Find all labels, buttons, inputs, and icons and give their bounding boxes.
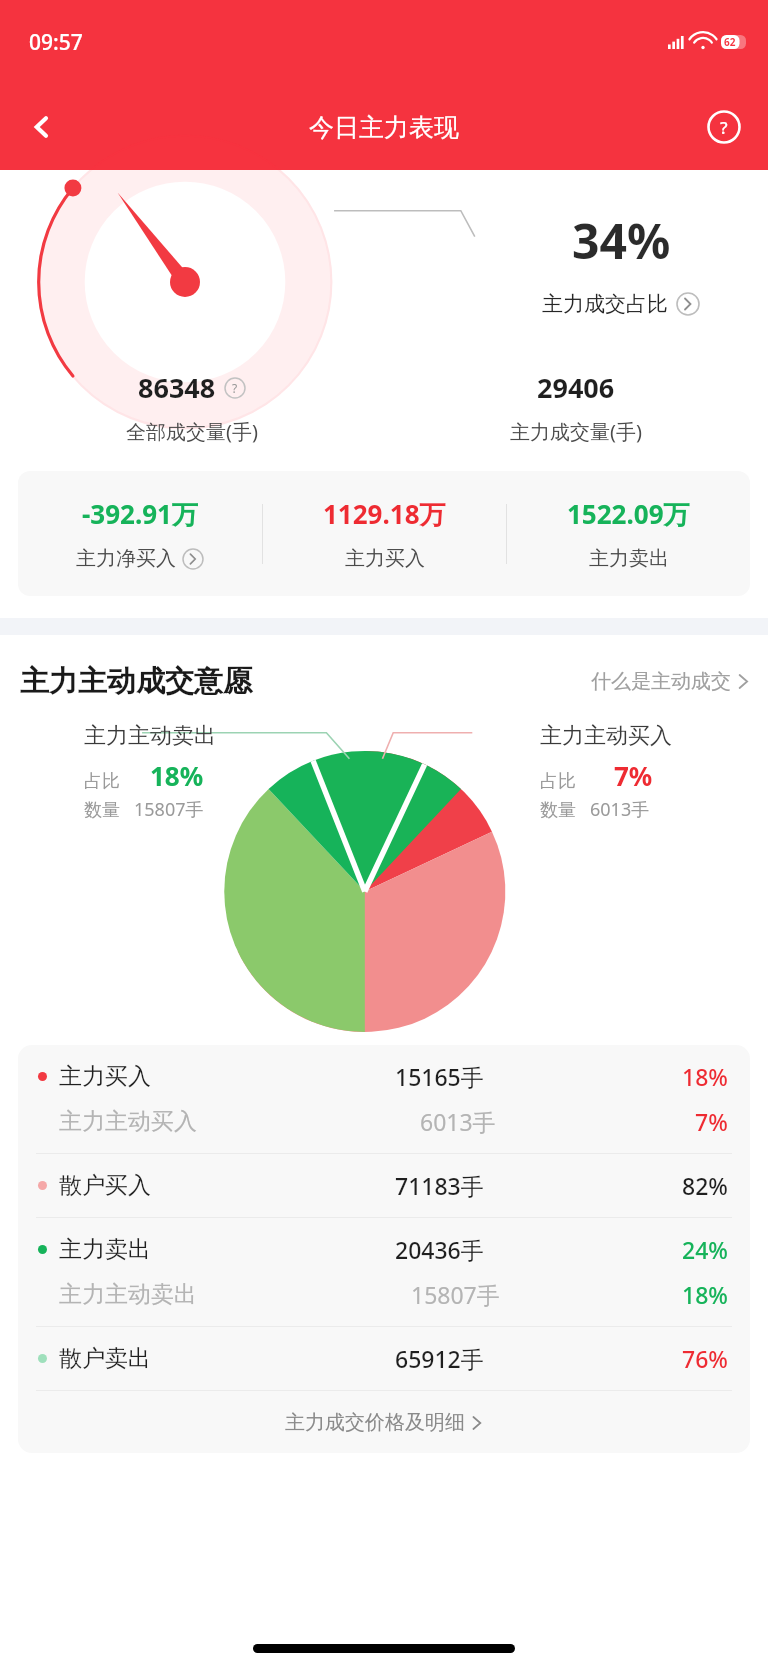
staticText: 7%: [695, 1106, 728, 1137]
staticText: 6013手: [590, 797, 650, 822]
staticText: 主力成交占比: [542, 291, 668, 317]
staticText: 6013手: [420, 1106, 496, 1137]
button[interactable]: 什么是主动成交: [591, 669, 750, 694]
staticText: 主力成交价格及明细: [285, 1410, 465, 1435]
staticText: 数量: [540, 799, 576, 822]
button[interactable]: Help: [696, 99, 752, 155]
staticText: 今日主力表现: [309, 112, 459, 143]
staticText: 15807手: [411, 1279, 500, 1310]
button[interactable]: -392.91万: [18, 471, 262, 596]
button[interactable]: 主力卖出: [18, 1218, 750, 1326]
staticText: 09:57: [29, 28, 83, 57]
staticText: 65912手: [395, 1343, 484, 1374]
button[interactable]: 1522.09万: [507, 471, 750, 596]
staticText: 主力净买入: [76, 546, 176, 571]
staticText: 29406: [537, 369, 615, 406]
staticText: 20436手: [395, 1234, 484, 1265]
staticText: -392.91万: [82, 496, 198, 532]
staticText: 主力主动买入: [540, 722, 672, 750]
staticText: 主力主动卖出: [84, 722, 216, 750]
staticText: 数量: [84, 799, 120, 822]
staticText: 15807手: [134, 797, 204, 822]
staticText: 18%: [150, 758, 204, 793]
staticText: 76%: [682, 1343, 728, 1374]
staticText: 1522.09万: [567, 496, 690, 532]
staticText: 24%: [682, 1234, 728, 1265]
staticText: 62: [724, 35, 736, 49]
staticText: 主力主动成交意愿: [20, 663, 252, 700]
button[interactable]: 散户卖出: [18, 1327, 750, 1390]
staticText: 18%: [682, 1279, 728, 1310]
staticText: 主力卖出: [589, 546, 669, 571]
button[interactable]: 主力成交价格及明细: [18, 1391, 750, 1453]
staticText: 占比: [540, 770, 576, 793]
staticText: ?: [232, 380, 238, 396]
staticText: 全部成交量(手): [126, 418, 258, 445]
button[interactable]: 主力成交占比: [542, 291, 700, 317]
button[interactable]: 散户买入: [18, 1154, 750, 1217]
staticText: 7%: [614, 758, 653, 793]
staticText: 15165手: [395, 1061, 484, 1092]
staticText: 散户买入: [59, 1171, 151, 1200]
staticText: 主力买入: [345, 546, 425, 571]
staticText: 什么是主动成交: [591, 669, 731, 694]
staticText: ?: [720, 116, 728, 139]
staticText: 主力买入: [59, 1062, 151, 1091]
staticText: 71183手: [395, 1170, 484, 1201]
staticText: 82%: [682, 1170, 728, 1201]
staticText: 主力主动买入: [59, 1107, 197, 1136]
staticText: 1129.18万: [323, 496, 446, 532]
button[interactable]: 主力买入: [18, 1045, 750, 1153]
button[interactable]: 86348: [138, 369, 246, 406]
staticText: 18%: [682, 1061, 728, 1092]
button[interactable]: 1129.18万: [263, 471, 506, 596]
staticText: 主力成交量(手): [510, 418, 642, 445]
staticText: 主力卖出: [59, 1235, 151, 1264]
staticText: 占比: [84, 770, 120, 793]
button[interactable]: Back: [16, 101, 68, 153]
staticText: 主力主动卖出: [59, 1280, 197, 1309]
staticText: 散户卖出: [59, 1344, 151, 1373]
staticText: 86348: [138, 369, 216, 406]
staticText: 34%: [572, 208, 671, 273]
